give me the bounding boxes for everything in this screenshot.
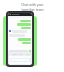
button[interactable] [9,30,31,33]
button[interactable]: Conversation app bar [8,13,32,16]
staticText: Chat with your [21,3,44,7]
button[interactable]: Chat with your [0,3,64,12]
button[interactable] [18,38,31,41]
button[interactable] [20,20,31,22]
button[interactable] [21,27,31,29]
button[interactable] [17,23,31,26]
staticText: together team [21,8,44,12]
button[interactable] [22,42,31,44]
